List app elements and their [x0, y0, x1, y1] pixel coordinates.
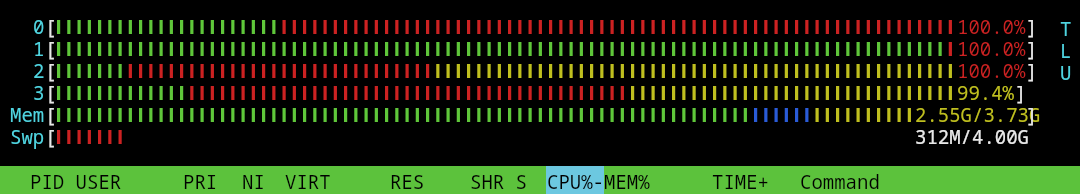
button[interactable]: htop system monitor — [0, 0, 1080, 194]
